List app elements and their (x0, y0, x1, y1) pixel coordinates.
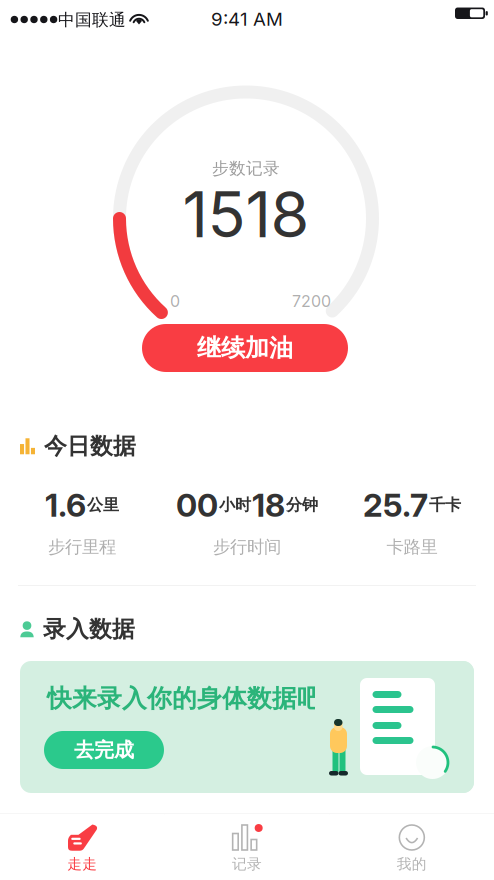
staticText: 1518 (182, 177, 309, 252)
staticText: 千卡 (429, 495, 461, 515)
staticText: 步行里程 (48, 536, 116, 558)
staticText: 录入数据 (43, 615, 135, 644)
staticText: 记录 (232, 855, 262, 873)
staticText: 小时 (219, 495, 251, 515)
staticText: 走走 (67, 855, 97, 873)
staticText: 00 (176, 486, 218, 524)
staticText: 卡路里 (386, 536, 437, 558)
button[interactable]: 继续加油 (142, 324, 348, 372)
staticText: 公里 (87, 495, 119, 515)
staticText: 继续加油 (197, 333, 293, 363)
staticText: 我的 (397, 855, 427, 873)
button[interactable]: 我的 (329, 812, 494, 880)
button[interactable]: 走走 (0, 812, 165, 880)
staticText: 25.7 (363, 486, 428, 524)
button[interactable]: 快来录入你的身体数据吧 (20, 661, 474, 793)
staticText: 9:41 AM (211, 8, 283, 30)
staticText: 步行时间 (213, 536, 281, 558)
button[interactable]: 记录 (165, 812, 329, 880)
staticText: 0 (170, 291, 180, 311)
staticText: 1.6 (45, 486, 86, 524)
staticText: 今日数据 (44, 432, 136, 461)
staticText: 中国联通 (58, 9, 126, 30)
staticText: 18 (252, 486, 285, 524)
staticText: 去完成 (74, 737, 134, 763)
staticText: 步数记录 (212, 158, 280, 179)
staticText: 分钟 (286, 495, 318, 515)
staticText: 快来录入你的身体数据吧 (47, 683, 322, 714)
staticText: 7200 (292, 291, 331, 311)
